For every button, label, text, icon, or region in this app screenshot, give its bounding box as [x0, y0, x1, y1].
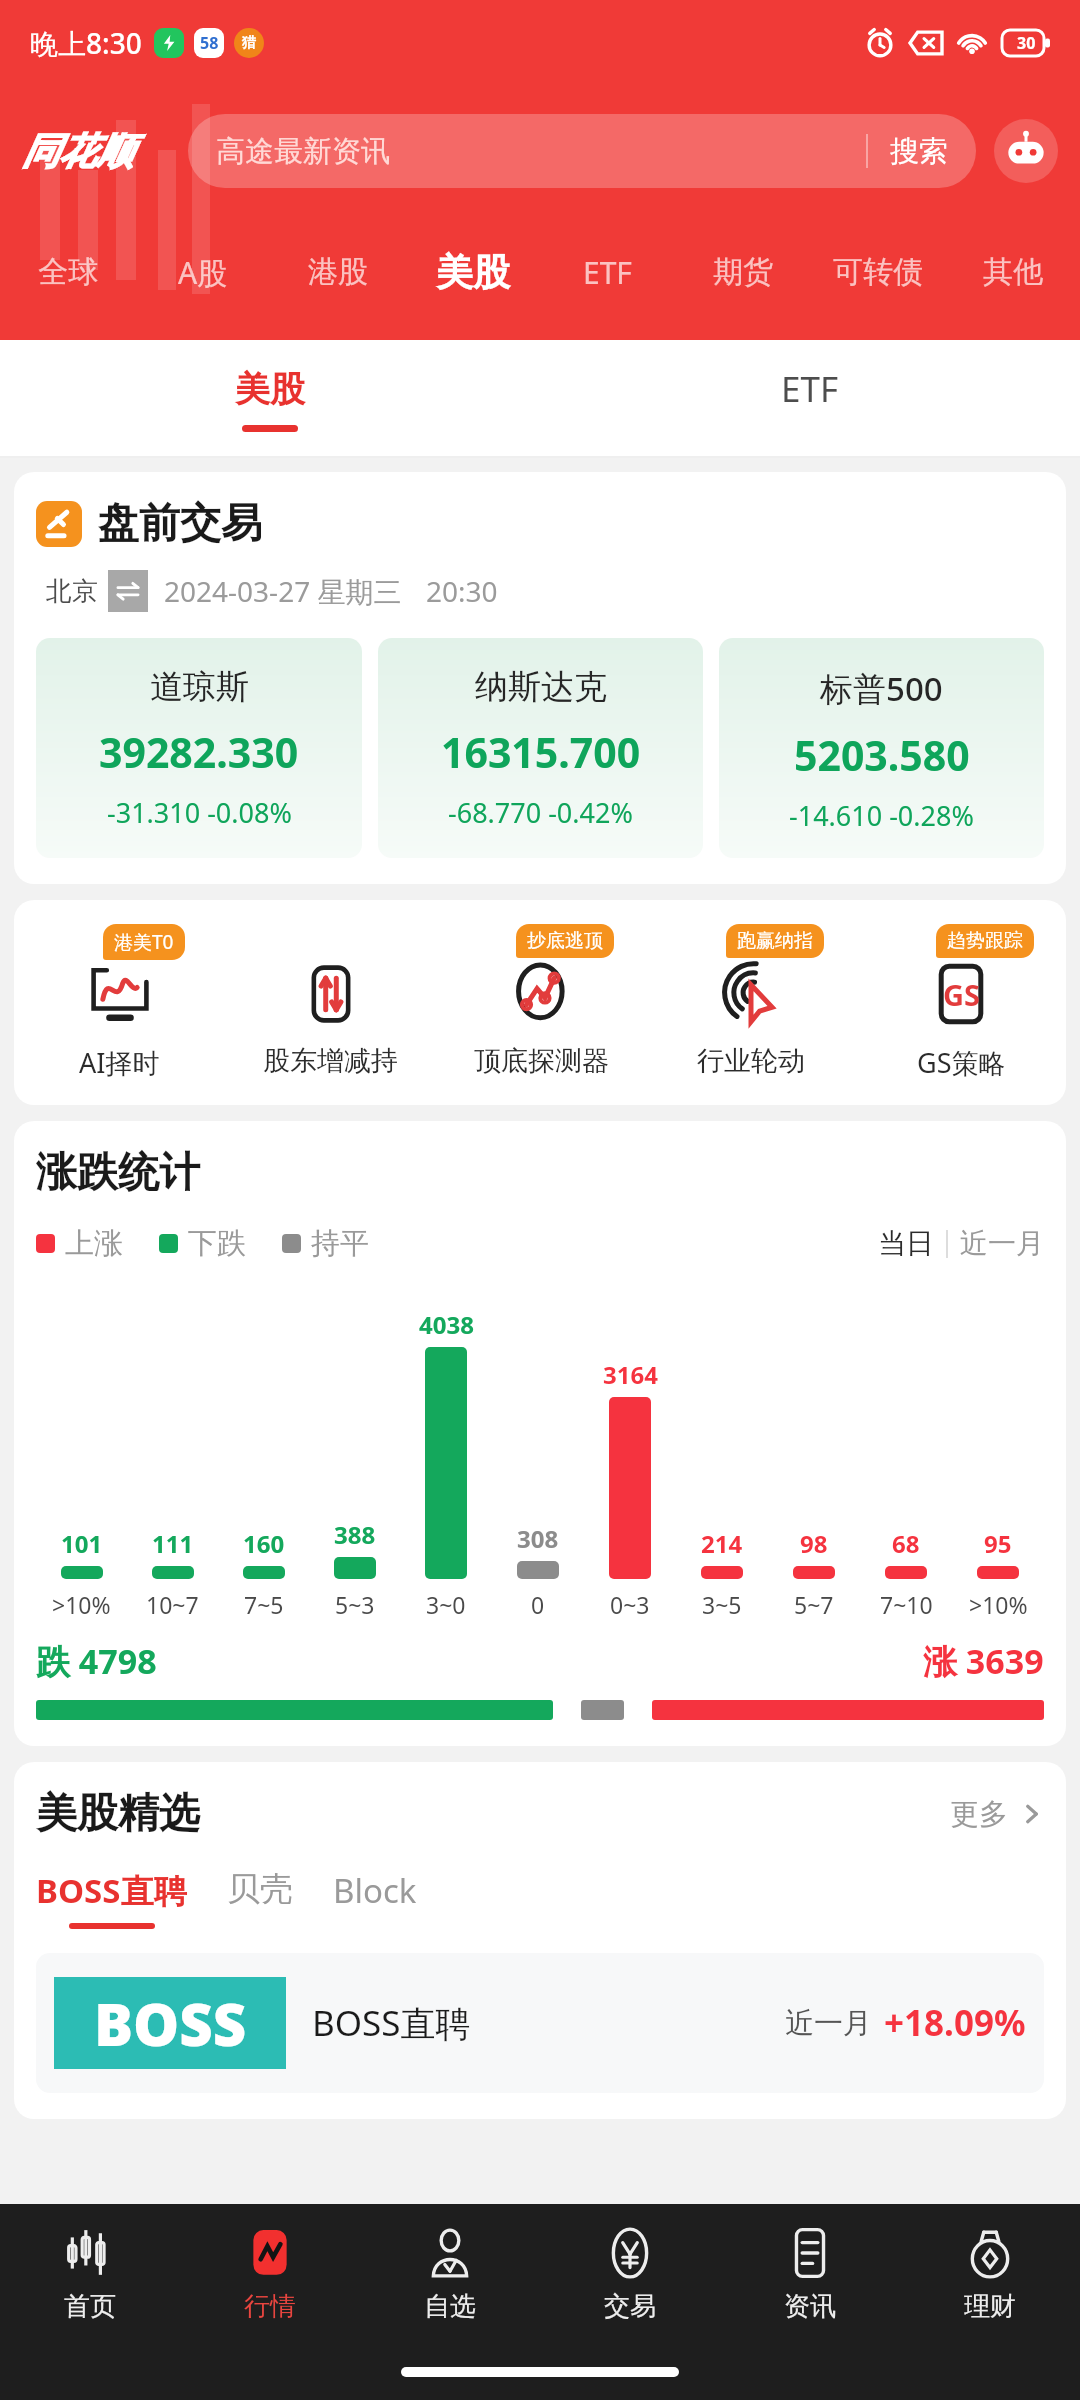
staticText: 猎	[242, 34, 256, 52]
button[interactable]: 行情	[180, 2204, 360, 2344]
staticText: BOSS直聘	[36, 1868, 187, 1913]
staticText: 10~7	[146, 1589, 199, 1620]
button[interactable]: 自选	[360, 2204, 540, 2344]
button[interactable]: BOSS	[36, 1953, 1044, 2093]
button[interactable]: ETF	[540, 340, 1080, 458]
button[interactable]: 抄底逃顶	[436, 924, 646, 1078]
button[interactable]: 资讯	[720, 2204, 900, 2344]
staticText: 趋势跟踪	[947, 929, 1023, 953]
staticText: 搜索	[890, 133, 948, 170]
staticText: 近一月	[785, 2005, 872, 2042]
staticText: 跌 4798	[36, 1638, 157, 1684]
staticText: 下跌	[188, 1225, 246, 1262]
button[interactable]: 可转债	[810, 222, 945, 322]
staticText: 港股	[308, 253, 368, 291]
button[interactable]: 全球	[0, 222, 135, 322]
staticText: 抄底逃顶	[527, 929, 603, 953]
staticText: A股	[178, 252, 228, 293]
staticText: 0	[531, 1589, 545, 1620]
staticText: 跑赢纳指	[737, 929, 813, 953]
button[interactable]: 标普500	[719, 638, 1044, 858]
button[interactable]: 港股	[270, 222, 405, 322]
button[interactable]: AI 助手	[994, 119, 1058, 183]
staticText: +18.09%	[884, 1999, 1026, 2047]
button[interactable]: Block	[333, 1868, 457, 1923]
staticText: 顶底探测器	[474, 1044, 609, 1078]
staticText: BOSS	[94, 1984, 247, 2063]
staticText: 期货	[713, 253, 773, 291]
button[interactable]: 股东增减持	[225, 924, 436, 1078]
staticText: 98	[800, 1527, 828, 1560]
staticText: 更多	[950, 1796, 1008, 1833]
staticText: 股东增减持	[263, 1044, 398, 1078]
staticText: 首页	[64, 2290, 116, 2323]
staticText: 68	[892, 1527, 920, 1560]
button[interactable]: GS	[856, 924, 1066, 1081]
button[interactable]: 交易	[540, 2204, 720, 2344]
staticText: 可转债	[833, 253, 923, 291]
staticText: 16315.700	[441, 724, 641, 780]
staticText: 持平	[311, 1225, 369, 1262]
staticText: 行情	[244, 2290, 296, 2323]
staticText: 5203.580	[794, 727, 970, 783]
staticText: 道琼斯	[150, 666, 249, 708]
staticText: 同花顺	[22, 128, 133, 175]
staticText: -31.310 -0.08%	[107, 794, 292, 831]
staticText: 111	[152, 1527, 194, 1560]
button[interactable]: 贝壳	[227, 1868, 333, 1920]
staticText: 资讯	[784, 2290, 836, 2323]
staticText: 近一月	[960, 1226, 1044, 1261]
staticText: 晚上8:30	[30, 24, 142, 62]
button[interactable]: 其他	[945, 222, 1080, 322]
staticText: 308	[517, 1522, 559, 1555]
staticText: 58	[200, 32, 219, 54]
staticText: 全球	[38, 253, 98, 291]
staticText: 上涨	[65, 1225, 123, 1262]
staticText: GS策略	[917, 1044, 1006, 1081]
staticText: 160	[243, 1527, 285, 1560]
button[interactable]: 美股精选	[36, 1788, 1044, 1840]
staticText: 贝壳	[227, 1868, 293, 1910]
staticText: 涨跌统计	[36, 1147, 200, 1199]
button[interactable]: 美股	[405, 222, 540, 322]
staticText: 美股	[235, 367, 305, 411]
button[interactable]: 高途最新资讯	[188, 114, 976, 188]
staticText: 高途最新资讯	[216, 133, 390, 170]
staticText: 95	[984, 1527, 1012, 1560]
button[interactable]: 首页	[0, 2204, 180, 2344]
staticText: 其他	[983, 253, 1043, 291]
staticText: 3~5	[702, 1589, 742, 1620]
button[interactable]: 道琼斯	[36, 638, 362, 858]
button[interactable]: 北京	[36, 570, 148, 612]
staticText: 101	[61, 1527, 103, 1560]
button[interactable]: 理财	[900, 2204, 1080, 2344]
button[interactable]: 美股	[0, 340, 540, 458]
button[interactable]: 期货	[675, 222, 810, 322]
staticText: AI择时	[79, 1044, 160, 1081]
staticText: 交易	[604, 2290, 656, 2323]
staticText: Block	[333, 1868, 417, 1913]
staticText: 美股	[436, 249, 510, 296]
staticText: 涨 3639	[923, 1638, 1044, 1684]
staticText: >10%	[52, 1589, 111, 1620]
staticText: 30	[1017, 32, 1036, 54]
button[interactable]: 跑赢纳指	[646, 924, 856, 1078]
staticText: 当日	[878, 1226, 934, 1261]
staticText: 港美T0	[114, 929, 174, 955]
staticText: 7~5	[244, 1589, 284, 1620]
staticText: 5~7	[794, 1589, 834, 1620]
staticText: 2024-03-27 星期三	[164, 572, 402, 610]
staticText: 北京	[46, 575, 98, 608]
button[interactable]: 当日	[878, 1226, 1044, 1261]
button[interactable]: BOSS直聘	[36, 1868, 227, 1929]
button[interactable]: ETF	[540, 222, 675, 322]
button[interactable]: 纳斯达克	[378, 638, 703, 858]
staticText: 0~3	[610, 1589, 650, 1620]
staticText: 3~0	[426, 1589, 466, 1620]
button[interactable]: A股	[135, 222, 270, 322]
staticText: 自选	[424, 2290, 476, 2323]
staticText: 标普500	[820, 666, 943, 711]
staticText: GS	[943, 975, 980, 1014]
staticText: 5~3	[335, 1589, 375, 1620]
button[interactable]: 港美T0	[14, 924, 225, 1081]
